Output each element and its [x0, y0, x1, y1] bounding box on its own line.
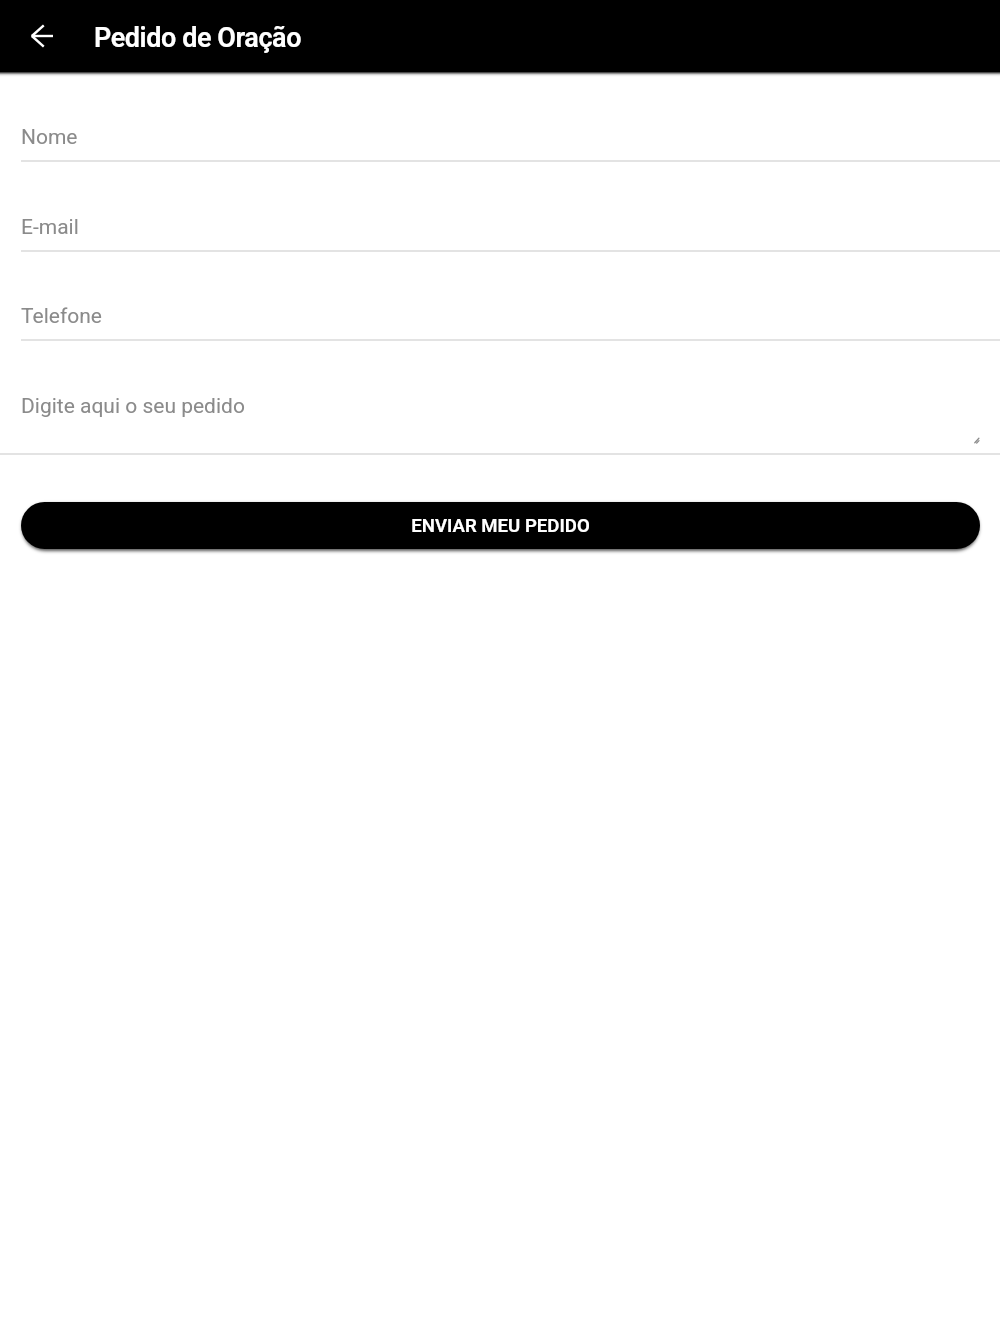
staticText: Pedido de Oração: [94, 22, 302, 54]
button[interactable]: Nome: [0, 107, 1000, 164]
button[interactable]: ENVIAR MEU PEDIDO: [21, 502, 980, 549]
button[interactable]: Back: [20, 14, 64, 58]
staticText: Digite aqui o seu pedido: [21, 394, 245, 419]
staticText: E-mail: [21, 215, 79, 240]
staticText: Telefone: [21, 304, 102, 329]
staticText: ENVIAR MEU PEDIDO: [411, 515, 590, 537]
button[interactable]: E-mail: [0, 197, 1000, 254]
button[interactable]: Telefone: [0, 286, 1000, 343]
staticText: Nome: [21, 125, 78, 150]
button[interactable]: Digite aqui o seu pedido: [0, 376, 1000, 455]
